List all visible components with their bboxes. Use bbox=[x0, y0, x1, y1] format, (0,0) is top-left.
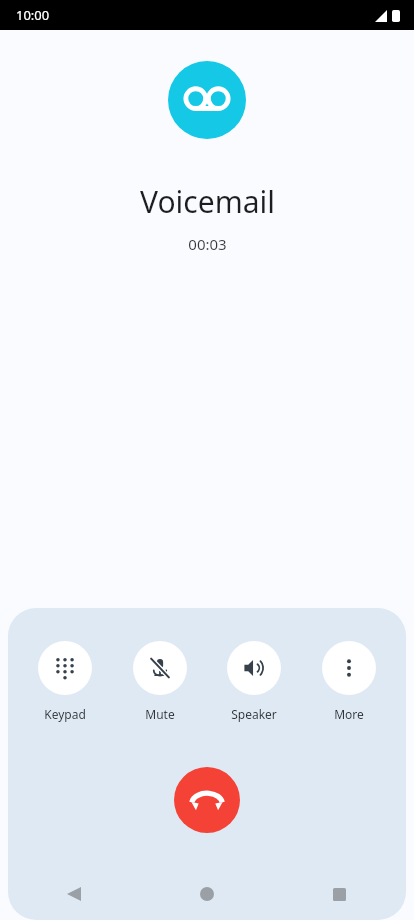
button[interactable]: Back bbox=[8, 868, 140, 920]
staticText: 00:03 bbox=[188, 234, 227, 254]
button[interactable]: More bbox=[311, 641, 387, 722]
staticText: Keypad bbox=[44, 706, 86, 722]
button[interactable]: Home bbox=[140, 868, 273, 920]
button[interactable]: Keypad bbox=[27, 641, 103, 722]
button[interactable]: End call bbox=[174, 767, 240, 833]
button[interactable]: Mute bbox=[122, 641, 198, 722]
staticText: Voicemail bbox=[140, 181, 275, 222]
staticText: Speaker bbox=[231, 706, 277, 722]
staticText: 10:00 bbox=[16, 6, 50, 24]
button[interactable]: Speaker bbox=[216, 641, 292, 722]
staticText: More bbox=[334, 706, 364, 722]
staticText: Mute bbox=[145, 706, 175, 722]
button[interactable]: Recent apps bbox=[273, 868, 406, 920]
